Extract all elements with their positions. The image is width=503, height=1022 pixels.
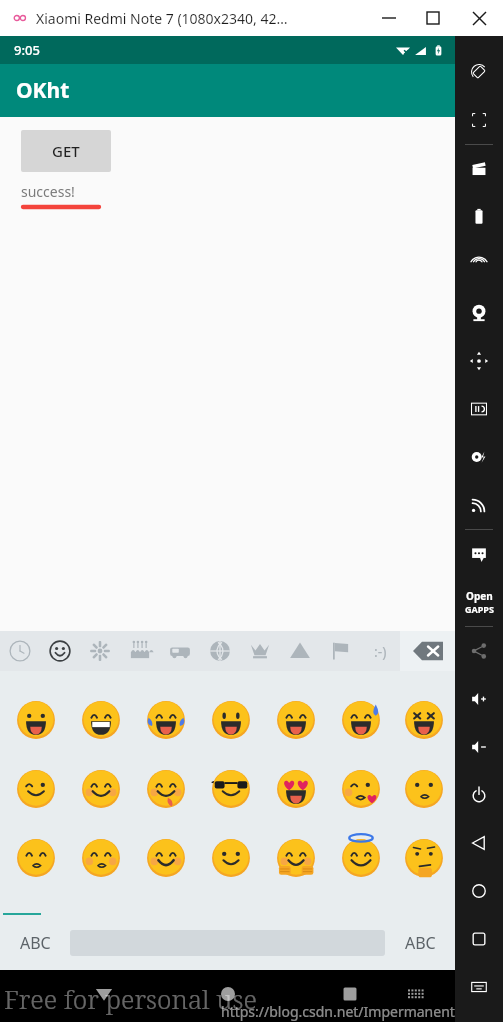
other: Close: [473, 12, 486, 25]
button[interactable]: Maximize: [411, 0, 455, 36]
button[interactable]: Flags: [320, 631, 360, 671]
button[interactable]: Zoom 1:1: [455, 96, 503, 144]
button[interactable]: Disk: [455, 433, 503, 481]
button[interactable]: Recents: [455, 915, 503, 963]
button[interactable]: Emoji: [68, 827, 133, 889]
button[interactable]: Emoji: [3, 827, 68, 889]
staticText: Xiaomi Redmi Note 7 (1080x2340, 42…: [36, 9, 288, 28]
staticText: Free for personal use: [4, 981, 257, 1016]
button[interactable]: Emoji: [68, 689, 133, 751]
button[interactable]: Activity: [200, 631, 240, 671]
button[interactable]: Nature: [80, 631, 120, 671]
button[interactable]: Rotate: [455, 48, 503, 96]
button[interactable]: Power: [455, 771, 503, 819]
button[interactable]: Keyboard: [455, 963, 503, 1011]
button[interactable]: Messages: [455, 530, 503, 578]
button[interactable]: Emoji: [328, 689, 393, 751]
button[interactable]: Network: [455, 481, 503, 529]
staticText: success!: [21, 182, 75, 201]
button[interactable]: Emoji: [393, 827, 455, 889]
button[interactable]: Volume up: [455, 675, 503, 723]
staticText: OKht: [16, 76, 70, 105]
button[interactable]: Emoji: [133, 827, 198, 889]
button[interactable]: Record: [455, 145, 503, 193]
staticText: :-): [374, 642, 387, 661]
button[interactable]: Food: [120, 631, 160, 671]
button[interactable]: Backspace: [400, 631, 455, 671]
button[interactable]: Emoji: [393, 689, 455, 751]
staticText: ABC: [20, 932, 51, 954]
button[interactable]: Travel: [160, 631, 200, 671]
button[interactable]: Device ID: [455, 385, 503, 433]
button[interactable]: Battery: [455, 193, 503, 241]
other: Maximize: [427, 12, 439, 24]
button[interactable]: Emoji: [198, 758, 263, 820]
button[interactable]: Share: [455, 627, 503, 675]
staticText: 9:05: [14, 41, 40, 59]
button[interactable]: Emoji: [198, 689, 263, 751]
button[interactable]: Emoji: [133, 689, 198, 751]
button[interactable]: ABC: [385, 916, 455, 970]
staticText: GAPPS: [465, 603, 494, 615]
button[interactable]: Emoji: [3, 758, 68, 820]
button[interactable]: Minimize: [367, 0, 411, 36]
button[interactable]: Recent: [0, 631, 40, 671]
button[interactable]: Open GAPPS: [455, 578, 503, 626]
button[interactable]: Volume down: [455, 723, 503, 771]
button[interactable]: Objects: [240, 631, 280, 671]
staticText: https://blog.csdn.net/Impermanent: [221, 1002, 455, 1021]
button[interactable]: Emoji: [3, 689, 68, 751]
button[interactable]: Emoji: [68, 758, 133, 820]
button[interactable]: D-pad: [455, 337, 503, 385]
button[interactable]: ABC: [0, 916, 70, 970]
button[interactable]: Emoji: [328, 758, 393, 820]
button[interactable]: Emoji: [263, 827, 328, 889]
button[interactable]: GET: [21, 130, 111, 172]
button[interactable]: Smileys: [40, 631, 80, 671]
button[interactable]: GPS: [455, 241, 503, 289]
button[interactable]: Emoji: [263, 689, 328, 751]
button[interactable]: Emoji: [133, 758, 198, 820]
other: Minimize: [382, 11, 396, 25]
button[interactable]: Back: [455, 819, 503, 867]
button[interactable]: Emoji: [393, 758, 455, 820]
button[interactable]: Close: [455, 0, 503, 36]
button[interactable]: Emoticons: [360, 631, 400, 671]
button[interactable]: Home: [455, 867, 503, 915]
button[interactable]: Emoji: [328, 827, 393, 889]
button[interactable]: Symbols: [280, 631, 320, 671]
staticText: GET: [52, 141, 80, 161]
button[interactable]: Emoji: [263, 758, 328, 820]
staticText: Open: [466, 589, 493, 603]
button[interactable]: Camera: [455, 289, 503, 337]
button[interactable]: Emoji: [198, 827, 263, 889]
staticText: ABC: [405, 932, 436, 954]
